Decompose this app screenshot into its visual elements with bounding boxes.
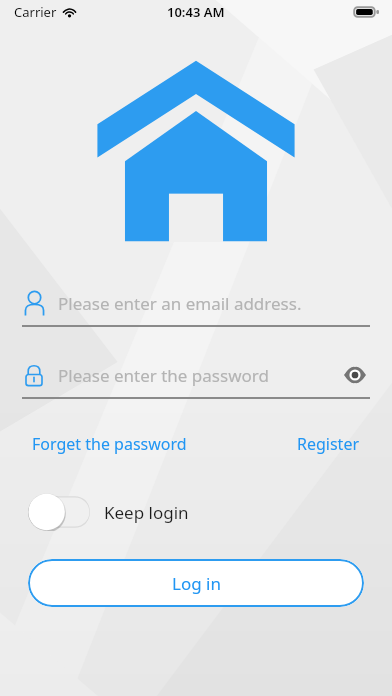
button[interactable]: Forget the password (30, 429, 189, 459)
button[interactable]: Register (295, 429, 362, 459)
button[interactable] (28, 493, 90, 531)
staticText: Log in (172, 572, 221, 595)
button[interactable]: Log in (28, 559, 364, 607)
button[interactable]: Show password (340, 360, 370, 390)
staticText: Forget the password (32, 433, 187, 455)
staticText: Keep login (104, 501, 189, 524)
button[interactable]: Please enter the password (22, 358, 370, 392)
staticText: Please enter an email address. (58, 292, 302, 315)
staticText: 10:43 AM (167, 3, 225, 21)
staticText: Register (297, 433, 360, 455)
staticText: Carrier (14, 3, 57, 21)
staticText: Please enter the password (58, 364, 269, 387)
button[interactable]: Please enter an email address. (22, 286, 370, 320)
